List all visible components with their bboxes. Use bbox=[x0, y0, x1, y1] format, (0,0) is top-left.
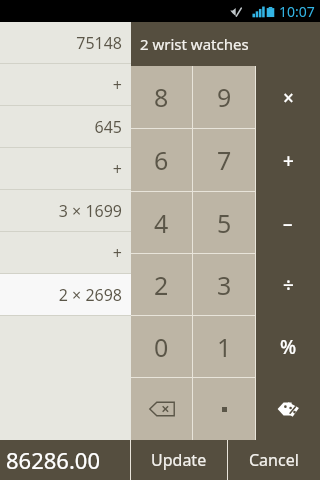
button[interactable]: 3 × 1699 bbox=[0, 190, 131, 231]
staticText: 3 bbox=[217, 268, 232, 302]
staticText: 1 bbox=[217, 330, 232, 364]
staticText: 645 bbox=[94, 116, 122, 138]
button[interactable]: 75148 bbox=[0, 22, 131, 63]
staticText: Cancel bbox=[249, 449, 299, 471]
button[interactable]: 0 bbox=[131, 316, 192, 377]
button[interactable]: 6 bbox=[131, 129, 192, 191]
staticText: 75148 bbox=[76, 32, 122, 54]
staticText: 7 bbox=[217, 143, 232, 177]
staticText: % bbox=[280, 334, 297, 360]
staticText: 5 bbox=[217, 206, 232, 240]
button[interactable]: Backspace bbox=[131, 378, 192, 440]
staticText: 2 × 2698 bbox=[58, 284, 122, 306]
button[interactable]: Subtract bbox=[256, 192, 320, 254]
staticText: Update bbox=[151, 449, 207, 471]
staticText: 2 bbox=[154, 268, 169, 302]
staticText: 3 × 1699 bbox=[58, 200, 122, 222]
staticText: 8 bbox=[154, 80, 169, 114]
button[interactable]: 1 bbox=[193, 316, 255, 377]
button[interactable]: Divide bbox=[256, 254, 320, 316]
button[interactable]: Add bbox=[256, 129, 320, 192]
button[interactable]: + bbox=[0, 232, 131, 273]
button[interactable]: + bbox=[0, 148, 131, 189]
staticText: + bbox=[283, 148, 294, 174]
staticText: 4 bbox=[154, 206, 169, 240]
staticText: ÷ bbox=[283, 272, 294, 298]
button[interactable]: 2 wrist watches bbox=[131, 22, 320, 66]
button[interactable]: 2 × 2698 bbox=[0, 274, 131, 315]
button[interactable]: Update bbox=[131, 440, 227, 480]
button[interactable]: 8 bbox=[131, 66, 192, 128]
button[interactable]: + bbox=[0, 64, 131, 105]
staticText: 86286.00 bbox=[6, 445, 100, 475]
staticText: 9 bbox=[217, 80, 232, 114]
button[interactable]: Percent bbox=[256, 316, 320, 378]
staticText: + bbox=[112, 242, 122, 264]
staticText: 0 bbox=[154, 330, 169, 364]
staticText: 6 bbox=[154, 143, 169, 177]
button[interactable]: 9 bbox=[193, 66, 255, 128]
button[interactable]: 86286.00 bbox=[0, 440, 130, 480]
button[interactable]: 645 bbox=[0, 106, 131, 147]
button[interactable]: Multiply bbox=[256, 66, 320, 129]
staticText: + bbox=[112, 74, 122, 96]
staticText: 2 wrist watches bbox=[140, 34, 249, 54]
button[interactable]: 7 bbox=[193, 129, 255, 191]
staticText: + bbox=[112, 158, 122, 180]
staticText: × bbox=[283, 85, 294, 111]
button[interactable]: Decimal point bbox=[193, 378, 255, 440]
button[interactable]: 3 bbox=[193, 254, 255, 315]
button[interactable]: 2 bbox=[131, 254, 192, 315]
button[interactable]: 5 bbox=[193, 192, 255, 253]
button[interactable]: 4 bbox=[131, 192, 192, 253]
button[interactable]: Discount bbox=[256, 378, 320, 440]
button[interactable]: Cancel bbox=[228, 440, 320, 480]
staticText: – bbox=[283, 210, 293, 236]
staticText: 10:07 bbox=[279, 2, 315, 21]
